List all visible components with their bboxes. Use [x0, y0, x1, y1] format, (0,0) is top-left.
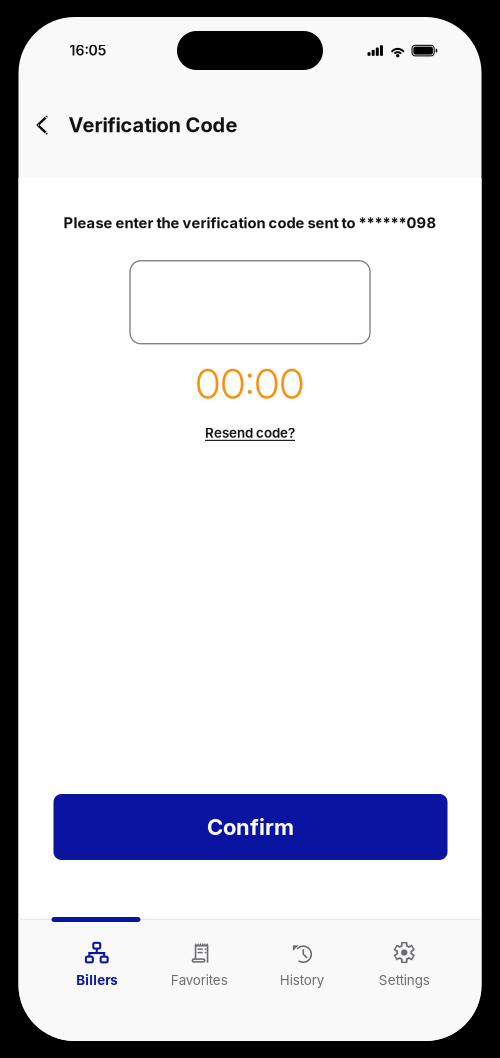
- button[interactable]: History: [250, 922, 353, 1002]
- button[interactable]: Settings: [353, 922, 455, 1002]
- staticText: Billers: [76, 972, 117, 988]
- staticText: Please enter the verification code sent …: [63, 214, 436, 232]
- button[interactable]: Confirm: [53, 794, 447, 860]
- staticText: Favorites: [171, 972, 228, 988]
- staticText: Settings: [379, 972, 430, 988]
- staticText: Verification Code: [68, 113, 237, 137]
- button[interactable]: Billers: [45, 922, 148, 1002]
- button[interactable]: Back: [26, 106, 58, 144]
- staticText: History: [280, 972, 324, 988]
- staticText: 16:05: [69, 42, 106, 59]
- staticText: Confirm: [207, 814, 294, 840]
- button[interactable]: Favorites: [148, 922, 250, 1002]
- staticText: 00:00: [195, 359, 304, 409]
- staticText: Resend code?: [205, 425, 295, 441]
- button[interactable]: Resend code?: [199, 421, 301, 445]
